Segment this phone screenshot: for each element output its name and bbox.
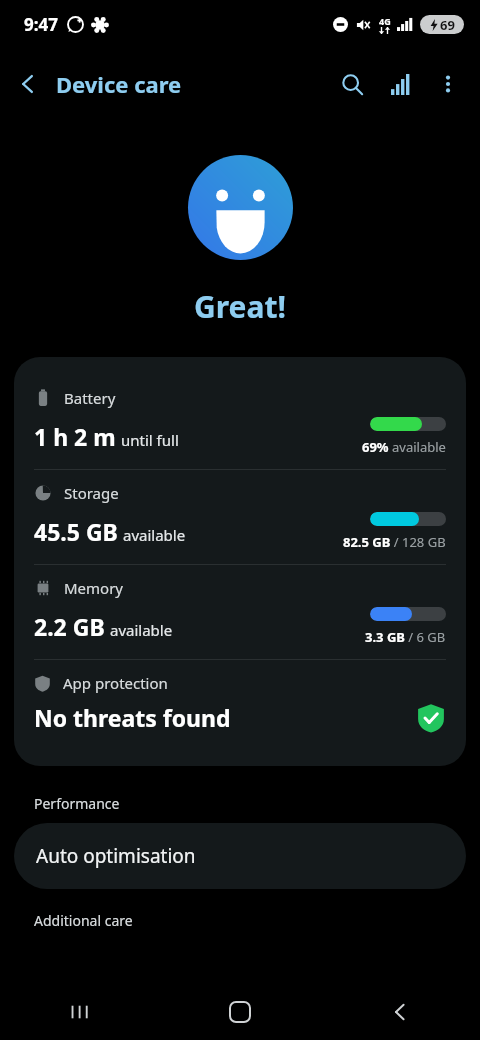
staticText: until full <box>121 430 179 450</box>
staticText: Great! <box>194 286 286 327</box>
staticText: No threats found <box>34 702 231 733</box>
staticText: 9:47 <box>24 13 58 36</box>
staticText: 1 h 2 m <box>34 421 116 452</box>
staticText: 45.5 GB <box>34 516 118 547</box>
staticText: available <box>110 620 173 640</box>
staticText: Battery <box>64 388 116 408</box>
button[interactable]: Back <box>320 984 480 1040</box>
button[interactable]: App protection <box>14 660 466 746</box>
button[interactable]: Home <box>160 984 320 1040</box>
staticText: available <box>123 525 186 545</box>
button[interactable]: Usage statistics <box>376 60 424 108</box>
staticText: 4G <box>379 15 391 27</box>
staticText: Auto optimisation <box>36 843 196 869</box>
button[interactable]: Recents <box>0 984 160 1040</box>
staticText: 69 <box>440 16 455 34</box>
button[interactable]: Back <box>0 56 56 112</box>
staticText: 3.3 GB / 6 GB <box>365 628 446 646</box>
staticText: 2.2 GB <box>34 611 105 642</box>
button[interactable]: Search <box>328 60 376 108</box>
button[interactable]: Battery <box>14 375 466 469</box>
staticText: Device care <box>56 69 182 99</box>
staticText: App protection <box>63 673 168 693</box>
button[interactable]: Memory <box>14 565 466 659</box>
button[interactable]: Auto optimisation <box>14 823 466 889</box>
staticText: Additional care <box>34 911 133 930</box>
staticText: 82.5 GB / 128 GB <box>343 533 446 551</box>
staticText: Storage <box>64 483 119 503</box>
button[interactable]: Storage <box>14 470 466 564</box>
staticText: Performance <box>34 794 120 813</box>
button[interactable]: More options <box>424 60 472 108</box>
staticText: 69% available <box>362 438 446 456</box>
staticText: Memory <box>64 578 124 598</box>
